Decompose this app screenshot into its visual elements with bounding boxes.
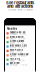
staticText: Sky Diner: [10, 62, 20, 65]
staticText: and attractions: [7, 4, 33, 9]
staticText: Green Garden: [10, 40, 24, 43]
button[interactable]: Fern & Fig: [5, 57, 35, 62]
button[interactable]: Blue Whale Cafe: [5, 44, 35, 49]
button[interactable]: Green Garden: [5, 40, 35, 44]
button[interactable]: Bread & Butter: [5, 35, 35, 40]
staticText: Pizza · 1.1 mi: [10, 51, 22, 53]
staticText: Rosa Pizzeria: [10, 49, 23, 51]
staticText: Fern & Fig: [10, 58, 20, 60]
button[interactable]: Sky Diner: [5, 62, 35, 66]
staticText: Blue Whale Cafe: [10, 44, 27, 47]
staticText: Bakery · 0.5 mi: [10, 37, 25, 40]
staticText: Taqueria del Sol: [10, 31, 26, 34]
staticText: Nearby: [7, 27, 18, 30]
staticText: See restaurants: [6, 0, 34, 5]
staticText: Salads · 1.6 mi: [10, 59, 24, 62]
staticText: American · 1.8 mi: [10, 64, 27, 66]
button[interactable]: Taqueria del Sol: [5, 31, 35, 35]
button[interactable]: Rosa Pizzeria: [5, 49, 35, 53]
staticText: Discover what is nearby: [7, 8, 32, 11]
button[interactable]: Amber Noodle Bar: [5, 53, 35, 57]
staticText: Bread & Butter: [10, 36, 24, 38]
staticText: Vegan · 0.7 mi: [10, 42, 24, 44]
staticText: Mexican · 0.3 mi: [10, 33, 26, 35]
staticText: Ramen · 1.4 mi: [10, 55, 25, 57]
staticText: Coffee · 0.9 mi: [10, 46, 25, 49]
staticText: Amber Noodle Bar: [10, 53, 29, 56]
